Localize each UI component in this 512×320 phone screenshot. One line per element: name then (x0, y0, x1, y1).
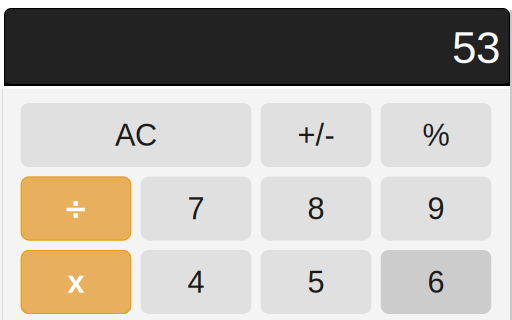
button[interactable]: 5 (261, 250, 371, 314)
button[interactable]: x (21, 250, 131, 314)
button[interactable]: 7 (141, 176, 251, 240)
button[interactable]: AC (21, 103, 251, 167)
staticText: 5 (307, 265, 324, 299)
button[interactable]: 6 (381, 250, 491, 314)
staticText: 7 (187, 191, 204, 226)
staticText: 53 (452, 23, 500, 73)
staticText: 4 (187, 265, 204, 299)
button[interactable]: % (381, 103, 491, 167)
staticText: AC (115, 118, 157, 152)
staticText: % (422, 118, 449, 152)
button[interactable]: 4 (141, 250, 251, 314)
staticText: 8 (307, 191, 324, 226)
staticText: 9 (427, 191, 444, 226)
staticText: ÷ (63, 191, 88, 225)
button[interactable]: 8 (261, 176, 371, 240)
staticText: x (67, 265, 84, 299)
button[interactable]: 9 (381, 176, 491, 240)
button[interactable]: ÷ (21, 176, 131, 240)
staticText: 6 (427, 265, 444, 299)
staticText: +/- (297, 118, 334, 152)
button[interactable]: +/- (261, 103, 371, 167)
